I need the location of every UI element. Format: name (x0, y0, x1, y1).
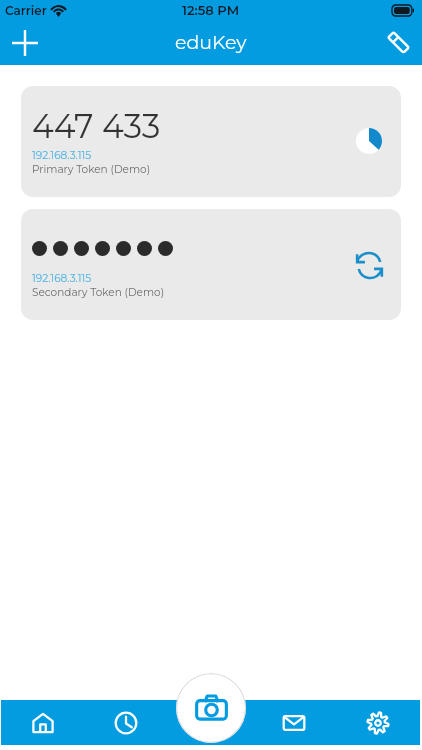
button[interactable]: Refresh token (350, 246, 388, 284)
staticText: eduKey (175, 31, 247, 54)
button[interactable]: Home (1, 700, 84, 745)
button[interactable]: Add token (0, 20, 50, 65)
button[interactable]: 192.168.3.115 (21, 209, 401, 320)
staticText: Carrier (5, 3, 47, 18)
staticText: Primary Token (Demo) (32, 163, 151, 176)
staticText: 12:58 PM (182, 2, 240, 18)
staticText: 447 433 (32, 106, 161, 146)
button[interactable]: Messages (252, 700, 336, 745)
button[interactable]: Edit (374, 20, 422, 65)
button[interactable]: Token expiry timer (350, 123, 388, 161)
staticText: 192.168.3.115 (32, 149, 92, 162)
staticText: Secondary Token (Demo) (32, 286, 165, 299)
button[interactable]: History (84, 700, 168, 745)
staticText: 192.168.3.115 (32, 272, 92, 285)
button[interactable]: Settings (336, 700, 420, 745)
button[interactable]: Scan QR code (176, 673, 246, 743)
button[interactable]: 447 433 (21, 86, 401, 197)
